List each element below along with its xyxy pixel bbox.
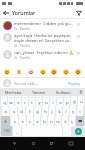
staticText: t <box>31 100 33 105</box>
button[interactable]: ü <box>78 96 84 106</box>
staticText: . <box>66 129 68 134</box>
staticText: mehmetdemir Cidden çok güzel 👏 <box>14 21 74 26</box>
staticText: n <box>50 119 53 124</box>
button[interactable]: Like <box>75 33 82 40</box>
staticText: x <box>21 119 24 124</box>
button[interactable]: Yorum ekle... <box>14 81 67 86</box>
button[interactable]: Emoji 7 <box>74 68 82 76</box>
button[interactable]: x <box>19 116 26 126</box>
button[interactable]: , <box>13 126 21 136</box>
button[interactable]: Share <box>73 7 84 18</box>
button[interactable]: mehmetdemir Cidden çok güzel 👏 <box>0 20 85 32</box>
button[interactable]: Tamam <box>26 88 51 96</box>
button[interactable]: 7 <box>43 96 49 106</box>
button[interactable]: a <box>2 106 9 116</box>
staticText: k <box>58 109 61 114</box>
button[interactable]: f <box>26 106 33 116</box>
button[interactable]: Back <box>0 7 11 18</box>
staticText: , <box>16 129 18 134</box>
button[interactable]: k <box>56 106 62 116</box>
button[interactable]: Like <box>75 50 82 57</box>
button[interactable]: Back <box>10 139 19 148</box>
button[interactable]: 9 <box>57 96 63 106</box>
staticText: s <box>13 109 15 114</box>
button[interactable]: ç <box>69 116 75 126</box>
staticText: d <box>20 109 23 114</box>
staticText: Tamam <box>32 90 46 95</box>
button[interactable]: Emoji 4 <box>39 68 47 76</box>
button[interactable]: i <box>77 106 83 116</box>
staticText: ç <box>71 119 73 124</box>
button[interactable]: 8 <box>50 96 56 106</box>
button[interactable]: 4 <box>22 96 28 106</box>
button[interactable]: Emoji 2 <box>15 68 23 76</box>
button[interactable]: 0 <box>64 96 70 106</box>
staticText: 6 <box>38 96 40 99</box>
button[interactable]: Backspace <box>76 116 84 126</box>
button[interactable]: m <box>55 116 61 126</box>
button[interactable]: v <box>34 116 40 126</box>
staticText: r <box>24 100 26 105</box>
button[interactable]: b <box>41 116 47 126</box>
staticText: y <box>38 100 41 105</box>
button[interactable]: c <box>27 116 33 126</box>
staticText: can_yilmaz Teşekkür ederim 🙏 <box>14 50 74 55</box>
staticText: z <box>14 119 16 124</box>
button[interactable]: 3 <box>15 96 21 106</box>
button[interactable]: Shift <box>1 116 10 126</box>
staticText: i <box>79 109 81 114</box>
button[interactable]: Paylaş <box>67 81 82 86</box>
button[interactable]: j <box>49 106 55 116</box>
staticText: 2s Yanıtla <box>14 27 30 31</box>
button[interactable]: Send <box>72 126 84 136</box>
staticText: ö <box>64 119 67 124</box>
button[interactable]: Kullanıcı <box>51 88 76 96</box>
staticText: p <box>66 100 69 105</box>
staticText: 2s Yanıtla <box>14 44 30 48</box>
button[interactable]: 1 <box>1 96 7 106</box>
staticText: ?123 <box>4 129 10 133</box>
button[interactable]: Recent apps <box>47 139 56 148</box>
button[interactable]: n <box>48 116 54 126</box>
staticText: e <box>17 100 20 105</box>
staticText: ı <box>52 100 54 105</box>
button[interactable]: ö <box>62 116 68 126</box>
button[interactable]: s <box>10 106 17 116</box>
button[interactable]: Voice input <box>76 88 85 96</box>
button[interactable]: Home <box>29 139 38 148</box>
button[interactable]: Emoji 1 <box>3 68 11 76</box>
button[interactable]: 2 <box>8 96 14 106</box>
button[interactable]: Merhaba <box>0 88 26 96</box>
button[interactable]: Numbers and symbols <box>1 126 12 136</box>
button[interactable]: Switch keyboard <box>66 139 75 148</box>
staticText: 5 <box>31 96 33 99</box>
button[interactable]: can_yilmaz Teşekkür ederim 🙏 <box>0 49 85 61</box>
staticText: q <box>3 100 6 105</box>
staticText: Paylaş <box>68 81 81 86</box>
staticText: l <box>65 109 67 114</box>
button[interactable]: g <box>34 106 41 116</box>
button[interactable]: h <box>42 106 48 116</box>
staticText: ayse.kaya Harika bir paylaşım, böyle dev… <box>14 33 74 43</box>
button[interactable]: ğ <box>71 96 77 106</box>
staticText: f <box>29 109 31 114</box>
staticText: b <box>43 119 46 124</box>
staticText: j <box>51 109 53 114</box>
button[interactable]: 6 <box>36 96 42 106</box>
button[interactable]: z <box>11 116 18 126</box>
button[interactable]: 5 <box>29 96 35 106</box>
staticText: 2s Yanıtla <box>14 56 30 60</box>
staticText: a <box>4 109 7 114</box>
button[interactable]: ş <box>70 106 76 116</box>
button[interactable]: Like <box>75 21 82 28</box>
button[interactable]: Emoji 3 <box>27 68 35 76</box>
button[interactable]: d <box>18 106 25 116</box>
button[interactable]: Emoji 6 <box>62 68 70 76</box>
button[interactable]: ayse.kaya Harika bir paylaşım, böyle dev… <box>0 32 85 49</box>
staticText: ş <box>72 109 74 114</box>
button[interactable]: l <box>63 106 69 116</box>
button[interactable]: Emoji 5 <box>50 68 58 76</box>
staticText: o <box>59 100 62 105</box>
